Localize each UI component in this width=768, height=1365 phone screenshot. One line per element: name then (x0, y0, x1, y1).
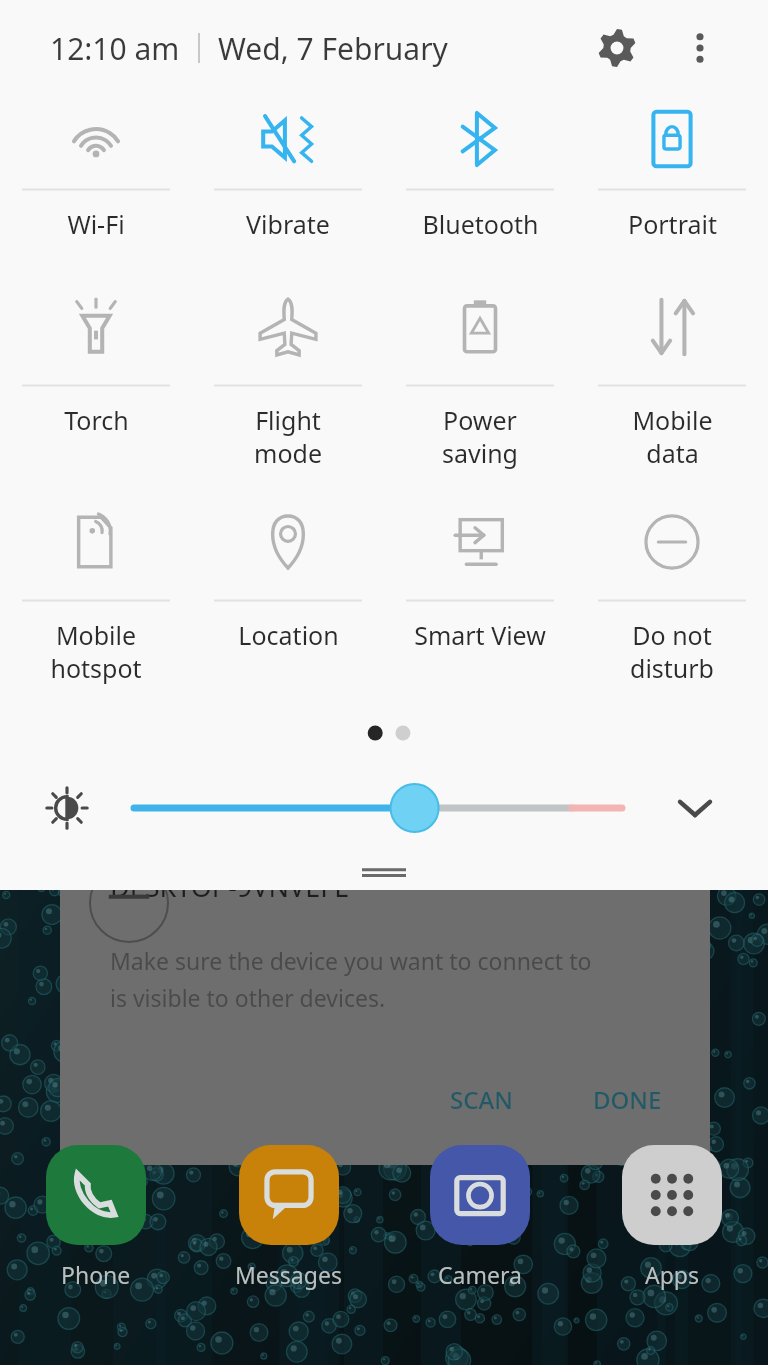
staticText: DESKTOP-9VNVEFE (110, 868, 350, 905)
button[interactable]: Messages (192, 1145, 384, 1290)
staticText: Wi-Fi (67, 207, 125, 241)
staticText: Vibrate (246, 207, 330, 241)
staticText: Phone (61, 1259, 131, 1290)
staticText: Power saving (442, 403, 518, 470)
staticText: Do not disturb (630, 618, 714, 685)
staticText: DONE (593, 1083, 662, 1116)
button[interactable]: Portrait (576, 96, 768, 276)
staticText: Mobile hotspot (50, 618, 142, 685)
staticText: Wed, 7 February (218, 28, 448, 69)
button[interactable]: DONE (579, 1075, 676, 1124)
staticText: Flight mode (254, 403, 322, 470)
button[interactable]: Torch (0, 276, 192, 491)
button[interactable]: Camera (384, 1145, 576, 1290)
staticText: SCAN (450, 1083, 513, 1116)
button[interactable]: Do not disturb (576, 491, 768, 706)
staticText: Location (238, 618, 339, 652)
button[interactable]: Mobile data (576, 276, 768, 491)
button[interactable]: Vibrate (192, 96, 384, 276)
staticText: Smart View (414, 618, 546, 652)
staticText: 12:10 am (50, 28, 180, 69)
button[interactable] (134, 760, 622, 856)
button[interactable]: Brightness (0, 760, 134, 856)
button[interactable]: Expand (622, 760, 768, 856)
button[interactable]: Mobile hotspot (0, 491, 192, 706)
button[interactable]: Phone (0, 1145, 192, 1290)
button[interactable]: More options (670, 18, 730, 78)
staticText: Portrait (628, 207, 717, 241)
staticText: Messages (235, 1259, 342, 1290)
button[interactable]: SCAN (436, 1075, 527, 1124)
staticText: Make sure the device you want to connect… (110, 945, 592, 1014)
staticText: Mobile data (632, 403, 713, 470)
button[interactable]: Wi-Fi (0, 96, 192, 276)
button[interactable]: Settings (584, 15, 650, 81)
button[interactable]: Bluetooth (384, 96, 576, 276)
button[interactable]: Flight mode (192, 276, 384, 491)
button[interactable]: Power saving (384, 276, 576, 491)
button[interactable]: Apps (576, 1145, 768, 1290)
staticText: Apps (645, 1259, 700, 1290)
staticText: Bluetooth (422, 207, 539, 241)
button[interactable]: Location (192, 491, 384, 706)
button[interactable]: Smart View (384, 491, 576, 706)
staticText: Torch (64, 403, 129, 437)
staticText: Camera (438, 1259, 522, 1290)
